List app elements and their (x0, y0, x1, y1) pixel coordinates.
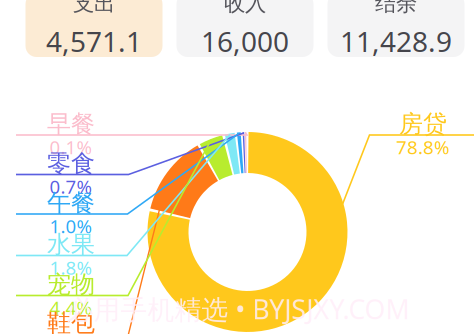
staticText: 必用手机精选 • BYJSJXY.COM (66, 291, 409, 327)
staticText: 16,000 (201, 22, 289, 60)
button[interactable]: 鞋包 (16, 311, 126, 334)
button[interactable]: 宠物 (16, 273, 126, 319)
staticText: 11,428.9 (340, 22, 452, 60)
staticText: 房贷 (399, 109, 447, 139)
staticText: 午餐 (47, 188, 95, 218)
button[interactable]: 水果 (16, 233, 126, 279)
staticText: 结余 (375, 0, 417, 16)
staticText: 0.7% (49, 174, 92, 199)
staticText: 1.0% (49, 214, 92, 238)
staticText: 零食 (47, 149, 95, 178)
button[interactable]: 房贷 (368, 112, 474, 158)
button[interactable]: 支出 (25, 0, 162, 57)
staticText: 4.4% (49, 295, 92, 320)
staticText: 支出 (73, 0, 115, 16)
staticText: 收入 (224, 0, 266, 16)
button[interactable]: 午餐 (16, 191, 126, 237)
staticText: 4,571.1 (46, 22, 142, 60)
button[interactable]: 结余 (327, 0, 464, 57)
staticText: 0.1% (49, 135, 92, 159)
button[interactable]: 零食 (16, 152, 126, 198)
staticText: 水果 (47, 230, 95, 259)
staticText: 早餐 (47, 109, 95, 139)
staticText: 1.8% (49, 255, 92, 280)
staticText: 鞋包 (47, 308, 95, 334)
staticText: 宠物 (47, 270, 95, 299)
button[interactable]: 收入 (176, 0, 313, 57)
button[interactable]: 早餐 (16, 112, 126, 158)
staticText: 78.8% (396, 135, 450, 159)
